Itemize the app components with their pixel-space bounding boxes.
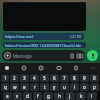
staticText: o xyxy=(83,84,86,90)
staticText: d xyxy=(26,93,29,99)
button[interactable]: j xyxy=(65,92,75,100)
button[interactable]: https://m.top/832 12430/29A7/3ps/cf-bb xyxy=(3,42,86,48)
button[interactable]: s xyxy=(13,92,22,100)
button[interactable]: e xyxy=(20,83,29,91)
staticText: 6 xyxy=(53,75,56,81)
staticText: e xyxy=(23,84,26,90)
button[interactable] xyxy=(3,2,86,31)
button[interactable]: More xyxy=(89,64,97,72)
staticText: 3 xyxy=(23,75,26,81)
other: Add attachment xyxy=(4,52,11,59)
staticText: k xyxy=(80,93,83,99)
button[interactable]: https://me.me/8365 16280000 xyxy=(3,33,84,40)
staticText: Message xyxy=(13,53,32,59)
staticText: l xyxy=(91,93,93,99)
button[interactable]: GIF xyxy=(37,64,45,72)
button[interactable]: 1 xyxy=(1,74,9,82)
button[interactable]: Sticker xyxy=(55,64,63,72)
other: Camera xyxy=(77,53,83,59)
button[interactable]: h xyxy=(54,92,64,100)
staticText: 2 xyxy=(13,75,16,81)
button[interactable]: 2 xyxy=(10,74,19,82)
button[interactable]: r xyxy=(30,83,39,91)
button[interactable]: i xyxy=(70,83,79,91)
staticText: w xyxy=(13,84,17,90)
button[interactable]: Emoji xyxy=(20,64,28,72)
button[interactable]: 3 xyxy=(20,74,29,82)
button[interactable]: w xyxy=(10,83,19,91)
button[interactable]: u xyxy=(60,83,69,91)
button[interactable]: Send voice message xyxy=(87,50,98,61)
button[interactable]: 5 xyxy=(40,74,49,82)
button[interactable]: p xyxy=(90,83,99,91)
staticText: s xyxy=(16,93,19,99)
staticText: 9 xyxy=(83,75,86,81)
staticText: h xyxy=(58,93,61,99)
button[interactable]: Clipboard xyxy=(3,64,11,72)
button[interactable]: 7 xyxy=(60,74,69,82)
button[interactable]: l xyxy=(87,92,97,100)
button[interactable]: Add attachment xyxy=(2,50,85,61)
button[interactable]: o xyxy=(80,83,89,91)
staticText: j xyxy=(69,93,71,99)
staticText: f xyxy=(37,93,39,99)
staticText: i xyxy=(74,84,76,90)
button[interactable]: Settings xyxy=(72,64,80,72)
staticText: r xyxy=(34,84,36,90)
staticText: 5:22 PM xyxy=(70,35,82,39)
staticText: 5 xyxy=(43,75,46,81)
staticText: g xyxy=(47,93,50,99)
button[interactable]: d xyxy=(23,92,32,100)
staticText: 0 xyxy=(93,75,96,81)
staticText: 8 xyxy=(73,75,76,81)
staticText: u xyxy=(63,84,66,90)
button[interactable]: t xyxy=(40,83,49,91)
staticText: t xyxy=(44,84,46,90)
button[interactable]: g xyxy=(43,92,53,100)
staticText: 1 xyxy=(4,75,7,81)
button[interactable]: 9 xyxy=(80,74,89,82)
staticText: q xyxy=(4,84,7,90)
staticText: https://m.top/832 12430/29A7/3ps/cf-bb xyxy=(5,43,81,47)
staticText: 7 xyxy=(63,75,66,81)
staticText: https://me.me/8365 16280000 xyxy=(5,34,37,39)
button[interactable]: 4 xyxy=(30,74,39,82)
staticText: a xyxy=(6,93,9,99)
button[interactable]: f xyxy=(33,92,42,100)
button[interactable]: q xyxy=(1,83,9,91)
button[interactable]: 6 xyxy=(50,74,59,82)
staticText: 4 xyxy=(33,75,36,81)
button[interactable]: 0 xyxy=(90,74,99,82)
button[interactable]: 8 xyxy=(70,74,79,82)
staticText: p xyxy=(93,84,96,90)
button[interactable]: a xyxy=(3,92,12,100)
staticText: y xyxy=(53,84,56,90)
button[interactable]: y xyxy=(50,83,59,91)
button[interactable]: k xyxy=(76,92,86,100)
other: Attach file xyxy=(69,53,75,59)
